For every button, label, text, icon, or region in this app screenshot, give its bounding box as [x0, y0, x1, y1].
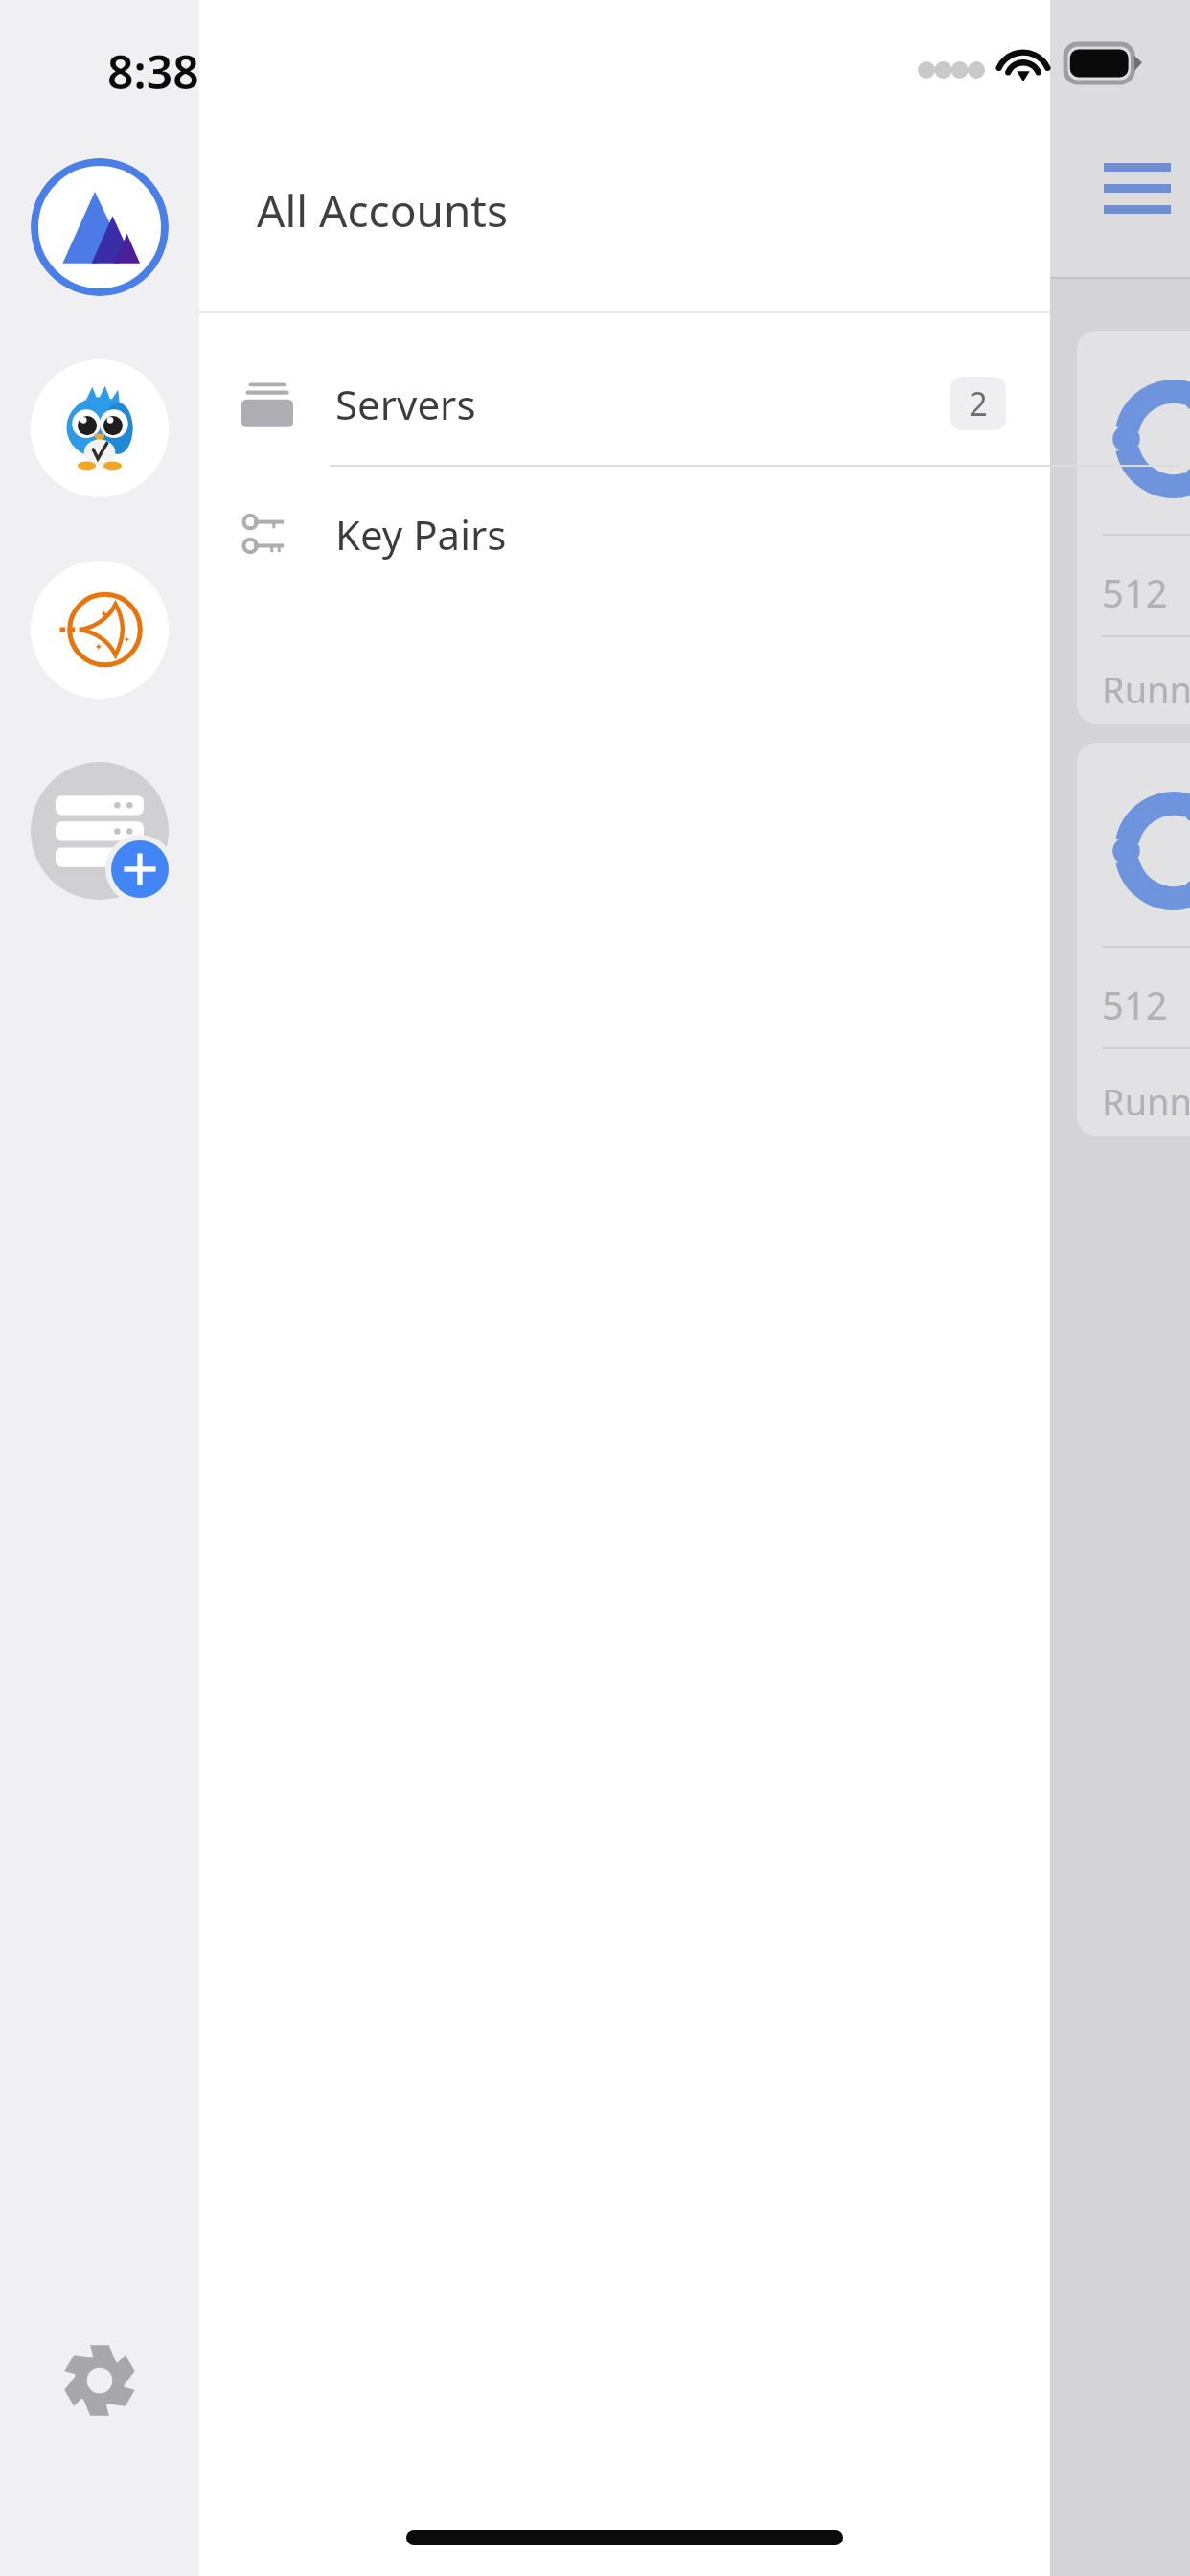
button[interactable]: Account 3	[31, 561, 169, 699]
button[interactable]: Menu	[1104, 155, 1171, 215]
staticText: 512	[1102, 978, 1168, 1030]
staticText: Running	[1102, 664, 1190, 714]
staticText: 8:38	[107, 40, 199, 103]
button[interactable]: Settings	[59, 2340, 140, 2421]
button[interactable]: Account 2	[31, 359, 169, 497]
staticText: All Accounts	[257, 180, 508, 241]
staticText: Key Pairs	[335, 507, 507, 562]
button[interactable]: Key Pairs	[199, 471, 1050, 596]
button[interactable]: Account 1	[31, 158, 169, 296]
staticText: 512	[1102, 566, 1168, 618]
staticText: 2	[969, 381, 988, 425]
staticText: Running	[1102, 1076, 1190, 1126]
button[interactable]: Add account	[31, 762, 169, 900]
button[interactable]: Servers	[199, 341, 1050, 466]
staticText: Servers	[335, 377, 476, 431]
